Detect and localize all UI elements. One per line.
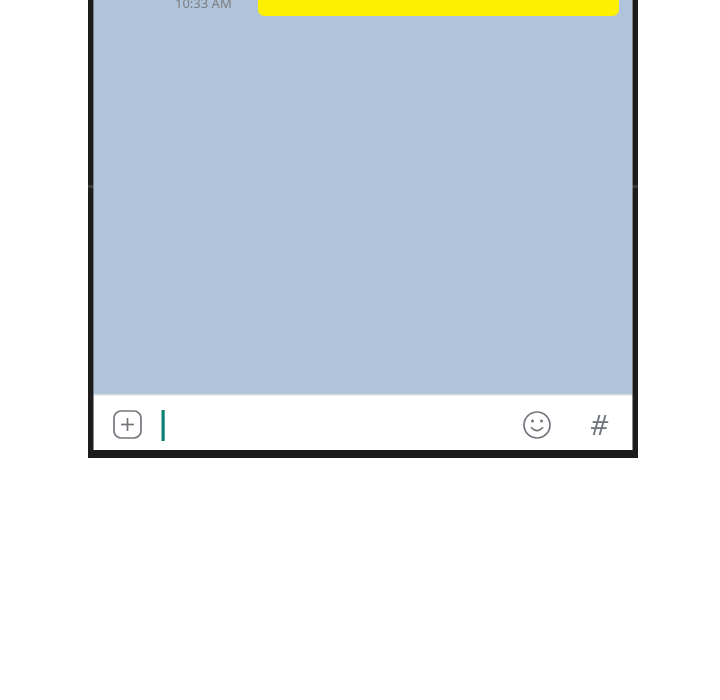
staticText: #	[582, 405, 616, 445]
button[interactable]: Add attachment	[108, 405, 148, 445]
button[interactable]: Emoji	[518, 406, 556, 444]
button[interactable]: Message input	[160, 402, 510, 448]
button[interactable]: Channels	[582, 405, 616, 445]
staticText: 10:33 AM	[175, 0, 232, 12]
